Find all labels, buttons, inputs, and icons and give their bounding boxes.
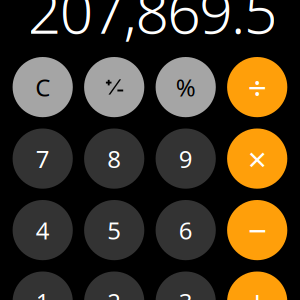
staticText: 6 xyxy=(179,214,193,246)
button[interactable]: 6 xyxy=(156,200,216,260)
staticText: 8 xyxy=(107,143,121,175)
button[interactable]: Toggle sign xyxy=(84,57,144,117)
staticText: ÷ xyxy=(248,65,267,109)
button[interactable]: − xyxy=(227,200,287,260)
button[interactable]: 1 xyxy=(13,271,73,300)
staticText: 4 xyxy=(36,214,50,246)
button[interactable]: + xyxy=(227,271,287,300)
button[interactable]: 4 xyxy=(13,200,73,260)
staticText: + xyxy=(248,279,267,300)
button[interactable]: 9 xyxy=(156,128,216,189)
staticText: − xyxy=(248,208,267,252)
button[interactable]: 5 xyxy=(84,200,144,260)
staticText: C xyxy=(35,71,50,103)
button[interactable]: 3 xyxy=(156,271,216,300)
staticText: 2 xyxy=(107,286,121,300)
staticText: 5 xyxy=(107,214,121,246)
button[interactable]: C xyxy=(13,57,73,117)
button[interactable]: 7 xyxy=(13,128,73,189)
button[interactable]: 2 xyxy=(84,271,144,300)
button[interactable]: × xyxy=(227,128,287,189)
staticText: 3 xyxy=(179,286,193,300)
staticText: × xyxy=(248,136,267,181)
staticText: 1 xyxy=(36,286,50,300)
staticText: % xyxy=(176,71,196,103)
button[interactable]: 8 xyxy=(84,128,144,189)
staticText: 9 xyxy=(179,143,193,175)
staticText: 7 xyxy=(36,143,50,175)
staticText: 207,869.5 xyxy=(28,0,277,50)
button[interactable]: ÷ xyxy=(227,57,287,117)
button[interactable]: % xyxy=(156,57,216,117)
